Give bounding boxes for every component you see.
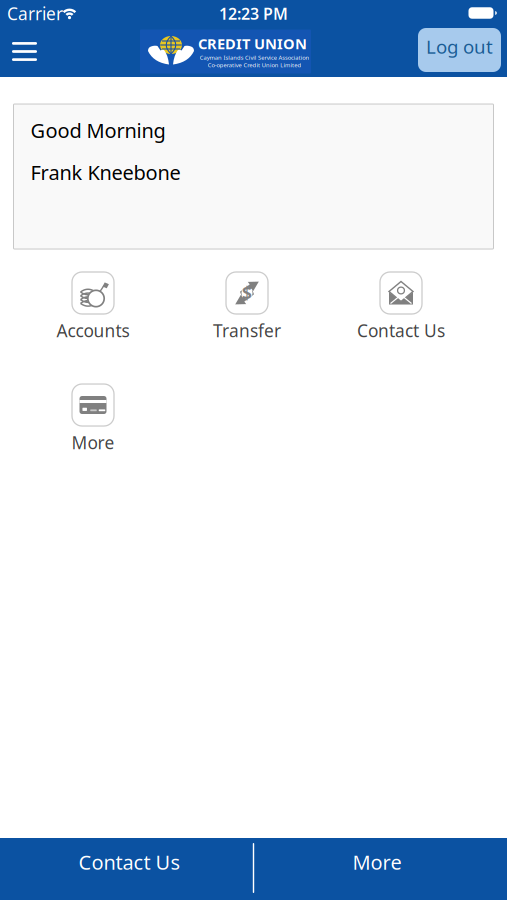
staticText: 12:23 PM [219, 3, 288, 24]
staticText: CREDIT UNION [198, 34, 307, 53]
staticText: More [352, 849, 401, 875]
staticText: $ [242, 281, 252, 304]
button[interactable]: Contact Us [324, 272, 478, 342]
button[interactable]: Contact Us [0, 838, 253, 900]
button[interactable]: Accounts [16, 272, 170, 342]
staticText: Frank Kneebone [30, 159, 180, 186]
button[interactable]: More [253, 838, 507, 900]
staticText: Contact Us [357, 319, 445, 342]
staticText: Co-operative Credit Union Limited [168, 58, 341, 72]
staticText: Good Morning [30, 117, 165, 144]
staticText: Transfer [213, 319, 281, 342]
button[interactable]: More [16, 384, 170, 454]
button[interactable]: Log out [418, 28, 501, 72]
button[interactable]: Menu [12, 42, 37, 61]
staticText: More [71, 431, 114, 454]
staticText: Cayman Islands Civil Service Association [153, 50, 356, 65]
staticText: Log out [426, 34, 493, 59]
staticText: Carrier [7, 2, 63, 25]
button[interactable]: $ [170, 272, 324, 342]
staticText: Contact Us [78, 849, 180, 875]
staticText: Accounts [56, 319, 129, 342]
